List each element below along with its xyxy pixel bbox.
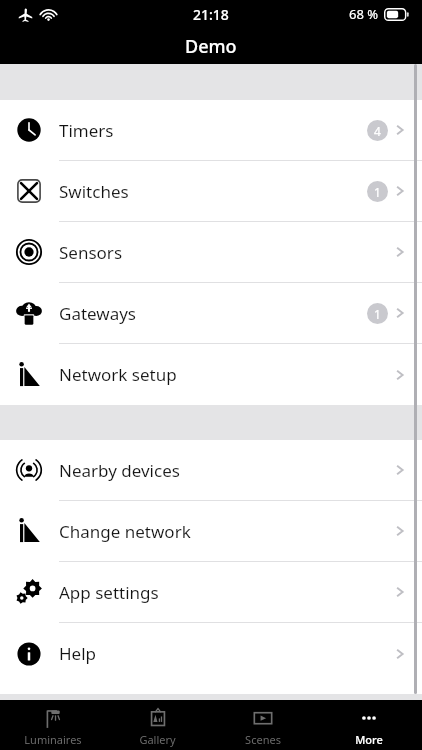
staticText: Scenes [245, 732, 281, 747]
button[interactable]: App settings [0, 562, 422, 622]
staticText: Nearby devices [59, 459, 180, 482]
staticText: 68 % [349, 5, 379, 23]
staticText: More [355, 732, 383, 747]
button[interactable]: Gateways [0, 283, 422, 343]
button[interactable]: Gallery [105, 700, 210, 750]
button[interactable]: Scenes [210, 700, 316, 750]
staticText: Timers [59, 119, 114, 142]
staticText: 1 [374, 184, 381, 200]
staticText: Switches [59, 180, 129, 203]
button[interactable]: Timers [0, 100, 422, 160]
staticText: Help [59, 642, 97, 665]
staticText: Sensors [59, 241, 123, 264]
staticText: App settings [59, 581, 159, 604]
button[interactable]: More [316, 700, 422, 750]
staticText: Gallery [139, 732, 176, 747]
button[interactable]: Switches [0, 161, 422, 221]
staticText: Demo [185, 34, 237, 59]
staticText: 4 [374, 123, 381, 139]
button[interactable]: Help [0, 623, 422, 684]
button[interactable]: Network setup [0, 344, 422, 405]
staticText: Gateways [59, 302, 137, 325]
staticText: 21:18 [193, 5, 229, 24]
staticText: Luminaires [24, 732, 82, 747]
button[interactable]: Change network [0, 501, 422, 561]
button[interactable]: Sensors [0, 222, 422, 282]
staticText: 1 [374, 306, 381, 322]
button[interactable]: Luminaires [0, 700, 105, 750]
staticText: Network setup [59, 363, 177, 386]
staticText: Change network [59, 520, 191, 543]
button[interactable]: Nearby devices [0, 440, 422, 500]
